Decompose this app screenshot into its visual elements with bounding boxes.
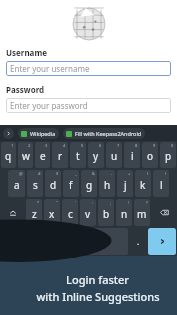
button[interactable]: Expand suggestions bbox=[3, 128, 14, 139]
staticText: 6 bbox=[99, 143, 102, 148]
button[interactable]: - bbox=[99, 170, 115, 197]
button[interactable]: Wikipedia bbox=[18, 128, 59, 139]
button[interactable]: ; bbox=[98, 199, 114, 226]
staticText: p bbox=[165, 149, 172, 163]
staticText: y bbox=[93, 149, 99, 163]
staticText: ! bbox=[128, 200, 130, 205]
staticText: a bbox=[14, 178, 20, 192]
staticText: ( bbox=[147, 171, 149, 176]
staticText: ; bbox=[110, 200, 112, 205]
staticText: w bbox=[22, 149, 30, 163]
button[interactable]: + bbox=[117, 170, 133, 197]
staticText: h bbox=[104, 178, 111, 192]
button[interactable]: @ bbox=[8, 170, 25, 197]
staticText: 7 bbox=[117, 143, 120, 148]
staticText: Enter your password bbox=[10, 100, 88, 111]
staticText: Login faster bbox=[66, 272, 129, 287]
button[interactable]: ( bbox=[135, 170, 151, 197]
staticText: _ bbox=[75, 171, 77, 176]
button[interactable]: 5 bbox=[70, 142, 86, 168]
staticText: i bbox=[131, 149, 134, 163]
button[interactable]: 1 bbox=[1, 142, 16, 168]
button[interactable]: * bbox=[26, 199, 42, 226]
staticText: 3 bbox=[45, 143, 48, 148]
staticText: ? bbox=[146, 200, 148, 205]
button[interactable]: ? bbox=[134, 199, 150, 226]
staticText: t bbox=[76, 149, 80, 163]
staticText: u bbox=[111, 149, 118, 163]
staticText: f bbox=[69, 178, 73, 192]
button[interactable]: 8 bbox=[124, 142, 140, 168]
staticText: : bbox=[92, 200, 94, 205]
staticText: q bbox=[5, 149, 12, 163]
staticText: x bbox=[49, 207, 55, 221]
staticText: r bbox=[58, 149, 63, 163]
staticText: 5 bbox=[81, 143, 84, 148]
button[interactable]: Period bbox=[130, 228, 146, 255]
staticText: 2 bbox=[28, 143, 31, 148]
staticText: ' bbox=[75, 200, 76, 205]
staticText: + bbox=[128, 171, 131, 176]
staticText: z bbox=[32, 207, 37, 221]
button[interactable]: 2 bbox=[18, 142, 33, 168]
staticText: j bbox=[124, 178, 127, 192]
button[interactable]: " bbox=[44, 199, 60, 226]
button[interactable]: Fill with Keepass2Android bbox=[63, 128, 145, 139]
button[interactable]: 6 bbox=[88, 142, 104, 168]
staticText: c bbox=[68, 207, 73, 221]
staticText: ) bbox=[165, 171, 167, 176]
staticText: " bbox=[56, 200, 58, 205]
button[interactable]: 0 bbox=[160, 142, 176, 168]
staticText: . bbox=[137, 236, 140, 247]
button[interactable]: Next bbox=[148, 228, 176, 255]
staticText: & bbox=[92, 171, 95, 176]
staticText: Username bbox=[6, 47, 47, 58]
staticText: k bbox=[140, 178, 146, 192]
staticText: e bbox=[40, 149, 46, 163]
staticText: b bbox=[103, 207, 110, 221]
button[interactable]: ' bbox=[62, 199, 78, 226]
button[interactable]: 4 bbox=[52, 142, 68, 168]
button[interactable]: # bbox=[27, 170, 43, 197]
button[interactable]: English bbox=[48, 228, 128, 255]
staticText: $ bbox=[56, 171, 59, 176]
button[interactable]: 9 bbox=[142, 142, 158, 168]
button[interactable]: Backspace bbox=[152, 199, 176, 226]
button[interactable]: Enter your password bbox=[6, 98, 171, 113]
staticText: with Inline Suggestions bbox=[36, 289, 160, 304]
button[interactable]: 3 bbox=[35, 142, 50, 168]
button[interactable]: $ bbox=[45, 170, 61, 197]
staticText: # bbox=[38, 171, 41, 176]
button[interactable]: 7 bbox=[106, 142, 122, 168]
staticText: @ bbox=[19, 171, 23, 176]
button[interactable]: & bbox=[81, 170, 97, 197]
staticText: - bbox=[111, 171, 113, 176]
staticText: Wikipedia bbox=[30, 130, 56, 137]
staticText: v bbox=[85, 207, 91, 221]
button[interactable]: Shift bbox=[1, 199, 24, 226]
button[interactable]: _ bbox=[63, 170, 79, 197]
staticText: 1 bbox=[11, 143, 14, 148]
button[interactable]: : bbox=[80, 199, 96, 226]
staticText: 8 bbox=[135, 143, 138, 148]
staticText: 4 bbox=[63, 143, 66, 148]
staticText: l bbox=[160, 178, 163, 192]
staticText: Enter your username bbox=[10, 63, 90, 74]
button[interactable]: ) bbox=[153, 170, 169, 197]
staticText: 0 bbox=[171, 143, 174, 148]
staticText: 9 bbox=[153, 143, 156, 148]
button[interactable]: ! bbox=[116, 199, 132, 226]
staticText: * bbox=[37, 200, 40, 205]
staticText: g bbox=[86, 178, 93, 192]
button[interactable]: Enter your username bbox=[6, 61, 171, 76]
staticText: s bbox=[33, 178, 38, 192]
staticText: Fill with Keepass2Android bbox=[75, 130, 142, 137]
staticText: n bbox=[121, 207, 128, 221]
staticText: Password bbox=[6, 84, 45, 95]
staticText: m bbox=[137, 207, 147, 221]
